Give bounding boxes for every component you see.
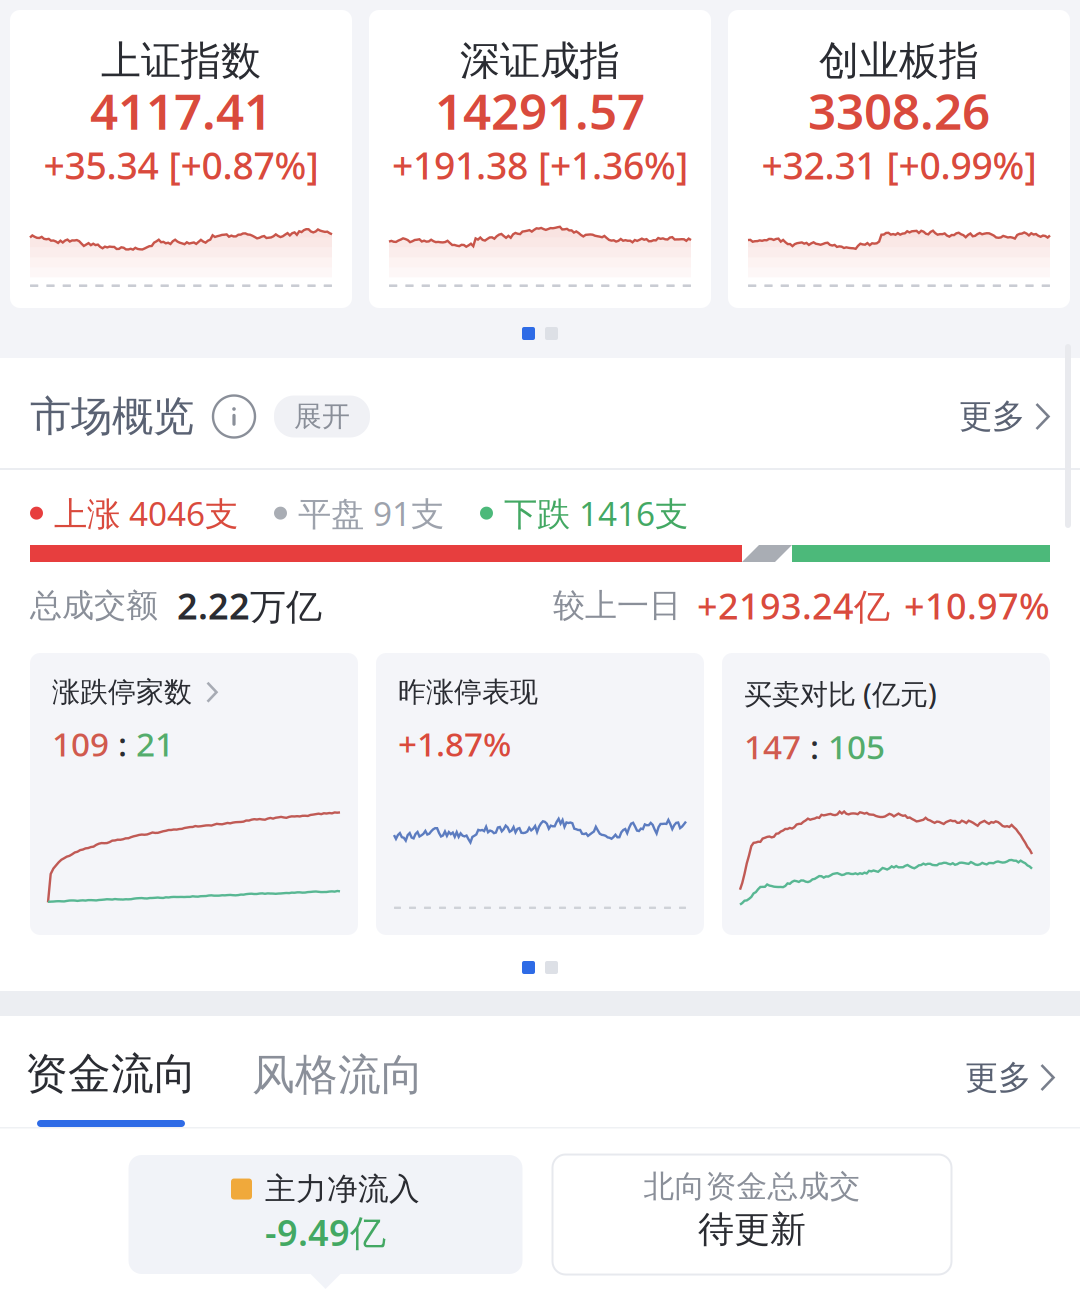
staticText: 3308.26 (808, 78, 990, 143)
staticText: 市场概览 (30, 391, 194, 442)
staticText: 上涨 4046支 (54, 491, 238, 535)
staticText: 昨涨停表现 (398, 675, 538, 709)
button[interactable]: 更多 (965, 1057, 1055, 1098)
staticText: 总成交额 (30, 586, 158, 625)
staticText: -9.49亿 (265, 1208, 386, 1256)
staticText: 较上一日 (553, 586, 681, 625)
button[interactable]: 上证指数 (10, 10, 352, 308)
staticText: +32.31 [+0.99%] (761, 140, 1036, 190)
staticText: 涨跌停家数 (52, 675, 192, 709)
staticText: +1.87% (398, 721, 511, 766)
button[interactable]: 昨涨停表现 (376, 653, 704, 935)
staticText: 21 (136, 721, 174, 766)
staticText: 2.22万亿 (177, 582, 322, 629)
staticText: 上证指数 (101, 36, 261, 85)
button[interactable]: 风格流向 (252, 1048, 424, 1102)
staticText: +10.97% (904, 582, 1050, 629)
staticText: 待更新 (698, 1207, 806, 1252)
staticText: 14291.57 (435, 78, 645, 143)
staticText: 展开 (294, 399, 350, 434)
button[interactable]: 深证成指 (369, 10, 711, 308)
staticText: 风格流向 (252, 1049, 424, 1101)
staticText: 资金流向 (25, 1048, 197, 1100)
staticText: 下跌 1416支 (504, 491, 688, 535)
button[interactable]: 展开 (274, 395, 370, 437)
staticText: +2193.24亿 (697, 582, 890, 629)
staticText: 主力净流入 (265, 1170, 420, 1208)
staticText: 147 (744, 724, 801, 768)
staticText: 更多 (965, 1057, 1031, 1098)
button[interactable]: 主力净流入 (128, 1155, 522, 1274)
button[interactable]: 涨跌停家数 (30, 653, 358, 935)
button[interactable]: 北向资金总成交 (552, 1154, 951, 1274)
button[interactable]: 资金流向 (25, 1047, 197, 1101)
staticText: 买卖对比 (亿元) (744, 675, 937, 712)
staticText: 更多 (959, 396, 1025, 437)
button[interactable]: 买卖对比 (亿元) (722, 653, 1050, 935)
staticText: 平盘 91支 (298, 491, 444, 535)
button[interactable]: 更多 (959, 396, 1050, 437)
staticText: 4117.41 (90, 78, 272, 143)
staticText: : (801, 724, 828, 768)
staticText: +35.34 [+0.87%] (43, 140, 318, 190)
staticText: 105 (828, 724, 885, 768)
staticText: 创业板指 (819, 36, 979, 85)
staticText: 109 (52, 721, 109, 766)
staticText: : (109, 721, 136, 766)
staticText: 北向资金总成交 (643, 1168, 860, 1205)
staticText: 深证成指 (460, 36, 620, 85)
staticText: +191.38 [+1.36%] (392, 140, 688, 190)
button[interactable]: 创业板指 (728, 10, 1070, 308)
